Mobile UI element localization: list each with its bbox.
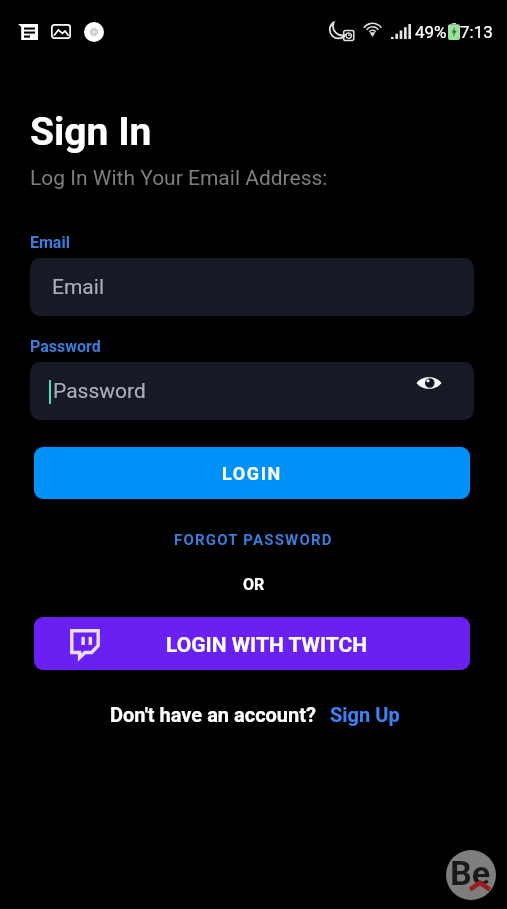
staticText: LOGIN xyxy=(222,463,282,484)
staticText: Password xyxy=(53,379,146,404)
staticText: OR xyxy=(243,575,265,594)
button[interactable]: Password xyxy=(30,362,474,420)
button[interactable]: Sign Up xyxy=(330,703,400,726)
staticText: FORGOT PASSWORD xyxy=(174,531,333,549)
staticText: Email xyxy=(52,275,104,300)
staticText: Sign Up xyxy=(330,703,400,726)
staticText: Be xyxy=(450,853,491,893)
staticText: Email xyxy=(30,233,70,252)
staticText: 49% xyxy=(415,22,447,42)
staticText: LOGIN WITH TWITCH xyxy=(166,633,368,658)
staticText: Password xyxy=(30,337,101,356)
staticText: Don't have an account? xyxy=(110,703,316,726)
button[interactable]: Show password xyxy=(412,366,446,400)
staticText: Sign In xyxy=(30,109,152,155)
button[interactable]: LOGIN WITH TWITCH xyxy=(34,617,470,670)
button[interactable]: FORGOT PASSWORD xyxy=(166,527,341,553)
button[interactable]: LOGIN xyxy=(34,447,470,499)
staticText: 7:13 xyxy=(460,22,493,42)
staticText: Log In With Your Email Address: xyxy=(30,166,328,191)
button[interactable]: Email xyxy=(30,258,474,316)
